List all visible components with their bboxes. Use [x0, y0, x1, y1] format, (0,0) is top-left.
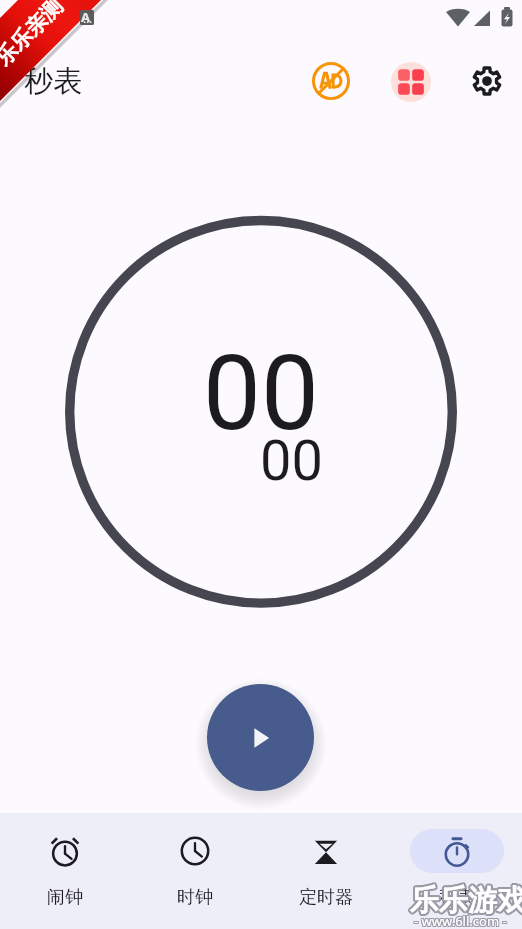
staticText: - www.6ll.com - [414, 912, 507, 929]
button[interactable]: 闹钟 [0, 813, 130, 909]
staticText: 00 [203, 333, 319, 454]
staticText: - www.6ll.com - [414, 913, 507, 929]
button[interactable]: Remove ads [307, 57, 355, 105]
button[interactable]: 时钟 [130, 813, 260, 909]
button[interactable]: 定时器 [260, 813, 391, 909]
staticText: 定时器 [299, 886, 353, 909]
staticText: 乐乐亲测 [0, 0, 68, 71]
button[interactable]: 秒表 [391, 813, 522, 909]
button[interactable]: Settings [463, 57, 511, 105]
staticText: 乐乐游戏 [410, 882, 522, 919]
staticText: 乐乐游戏 [411, 882, 522, 919]
staticText: 乐乐游戏 [410, 884, 522, 921]
staticText: 乐乐游戏 [409, 883, 522, 920]
staticText: 乐乐游戏 [408, 882, 522, 919]
staticText: 乐乐游戏 [410, 883, 522, 920]
staticText: 乐乐游戏 [409, 884, 522, 921]
staticText: A [81, 8, 90, 26]
staticText: 乐乐游戏 [409, 880, 522, 917]
staticText: 闹钟 [47, 886, 83, 909]
staticText: - www.6ll.com - [415, 911, 508, 929]
staticText: 乐乐游戏 [410, 882, 522, 919]
staticText: 乐乐游戏 [409, 881, 522, 918]
staticText: 乐乐游戏 [412, 882, 522, 919]
staticText: - www.6ll.com - [413, 912, 506, 929]
staticText: 秒表 [439, 886, 475, 909]
staticText: 秒表 [24, 63, 82, 100]
staticText: 00 [260, 428, 323, 494]
button[interactable]: Start [207, 684, 314, 791]
staticText: 乐乐游戏 [409, 882, 522, 919]
staticText: - www.6ll.com - [413, 913, 506, 929]
staticText: 乐乐游戏 [408, 883, 522, 920]
staticText: - www.6ll.com - [415, 912, 508, 929]
staticText: 乐乐游戏 [412, 883, 522, 920]
staticText: 时钟 [177, 886, 213, 909]
staticText: 乐乐游戏 [412, 881, 522, 918]
staticText: 乐乐游戏 [411, 881, 522, 918]
staticText: 乐乐游戏 [411, 884, 522, 921]
staticText: 乐乐游戏 [410, 880, 522, 917]
button[interactable]: More apps [387, 58, 435, 106]
staticText: 乐乐游戏 [411, 883, 522, 920]
staticText: - www.6ll.com - [415, 913, 508, 929]
staticText: 乐乐游戏 [408, 881, 522, 918]
staticText: - www.6ll.com - [414, 911, 507, 929]
staticText: 乐乐游戏 [410, 881, 522, 918]
staticText: - www.6ll.com - [414, 912, 507, 929]
staticText: 乐乐游戏 [411, 880, 522, 917]
staticText: - www.6ll.com - [413, 911, 506, 929]
